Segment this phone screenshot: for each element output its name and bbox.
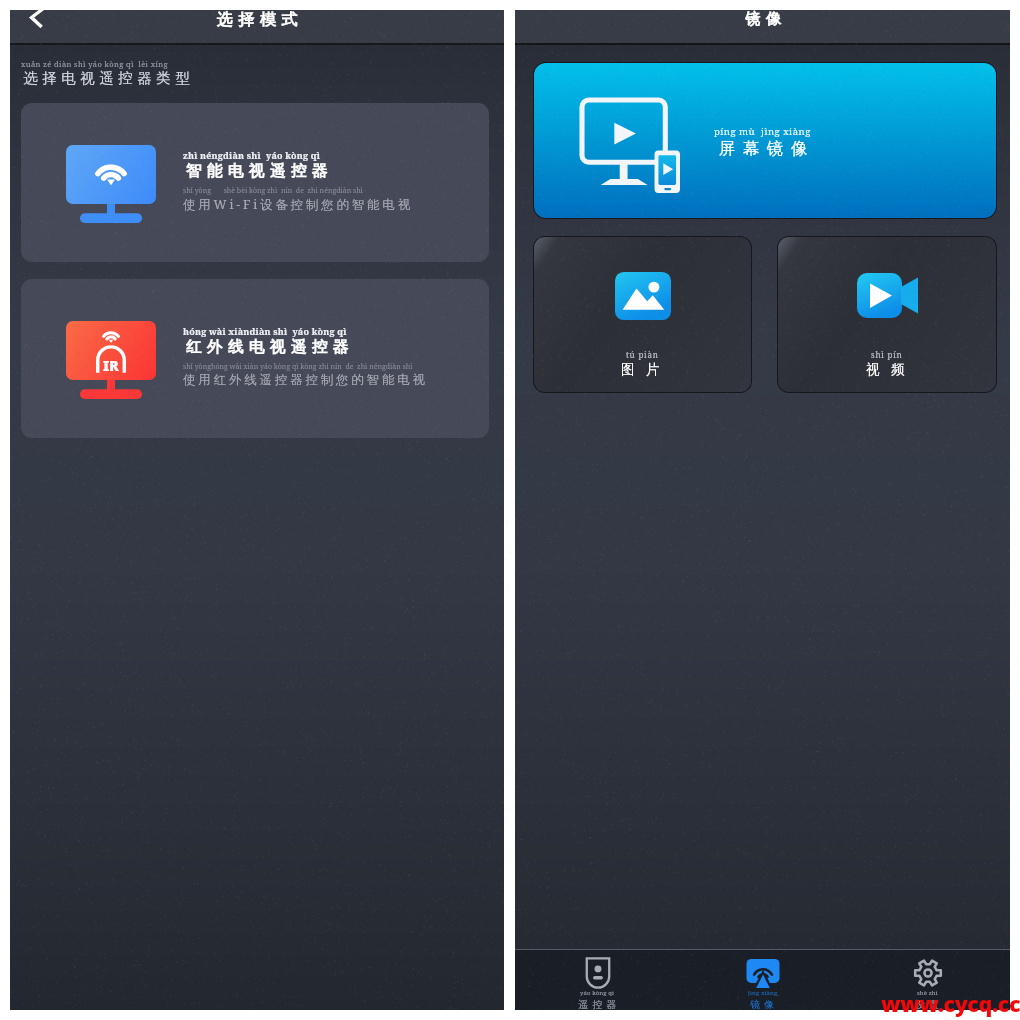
staticText: 镜 像: [750, 997, 775, 1010]
staticText: hóng wài xiàndiàn shì yáo kòng qì: [183, 325, 347, 337]
staticText: xuǎn zé diàn shì yáo kòng qì lèi xíng: [21, 59, 168, 69]
button[interactable]: IR: [21, 279, 489, 438]
staticText: shè zhì: [917, 989, 938, 997]
staticText: 红外线电视遥控器: [183, 337, 351, 357]
staticText: 选择模式: [214, 10, 300, 30]
staticText: píng mù jìng xiàng: [714, 125, 811, 138]
staticText: shì pín: [871, 349, 903, 360]
other: Mirroring: [746, 958, 780, 988]
staticText: 使用红外线遥控器控制您的智能电视: [183, 372, 428, 388]
button[interactable]: píng mù jìng xiàng: [534, 63, 996, 218]
button[interactable]: Mirroring: [680, 950, 845, 1010]
staticText: 镜像: [742, 10, 784, 29]
staticText: 遥 控 器: [578, 997, 618, 1010]
staticText: 使用Wi-Fi设备控制您的智能电视: [183, 196, 413, 213]
staticText: zhì néngdiàn shì yáo kòng qì: [183, 149, 321, 161]
staticText: 视 频: [866, 360, 909, 378]
staticText: 设 置: [915, 997, 940, 1010]
staticText: tú piàn: [626, 349, 659, 360]
button[interactable]: Settings: [845, 950, 1010, 1010]
staticText: IR: [103, 356, 119, 375]
other: Settings: [911, 958, 945, 988]
staticText: 屏幕镜像: [715, 138, 811, 159]
staticText: shǐ yònghóng wài xiàn yáo kòng qì kòng z…: [183, 362, 413, 372]
staticText: 图 片: [621, 360, 664, 378]
other: Remote: [581, 958, 615, 988]
button[interactable]: Back: [23, 10, 49, 30]
button[interactable]: Remote: [515, 950, 680, 1010]
staticText: 选择电视遥控器类型: [21, 69, 192, 87]
staticText: jìng xiàng: [748, 989, 778, 997]
button[interactable]: tú piàn: [534, 237, 751, 392]
staticText: yáo kòng qì: [580, 989, 615, 997]
button[interactable]: zhì néngdiàn shì yáo kòng qì: [21, 103, 489, 262]
staticText: www.cycq.cc: [881, 989, 1020, 1018]
button[interactable]: shì pín: [778, 237, 996, 392]
staticText: 智能电视遥控器: [183, 161, 330, 181]
staticText: shǐ yòng shè bèi kòng zhì nín de zhì nén…: [183, 186, 363, 196]
